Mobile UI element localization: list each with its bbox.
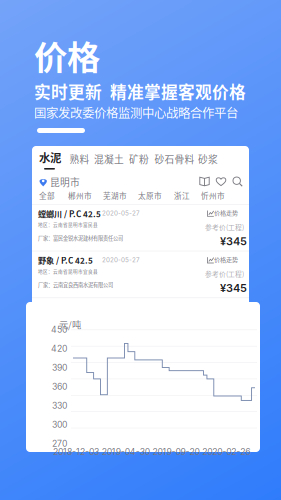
- staticText: 水泥: [39, 149, 61, 166]
- button[interactable]: 砂浆: [198, 152, 218, 166]
- staticText: 270: [52, 438, 67, 449]
- button[interactable]: 熟料: [69, 152, 89, 166]
- staticText: 420: [51, 343, 67, 354]
- staticText: 2020-05-27: [102, 209, 140, 217]
- button[interactable]: 目录: [199, 176, 210, 187]
- staticText: ¥345: [220, 281, 247, 295]
- button[interactable]: 昆明市: [39, 175, 80, 189]
- button[interactable]: 太原市: [138, 190, 162, 201]
- button[interactable]: 忻州市: [201, 190, 225, 201]
- staticText: 2018-12-03: [53, 446, 99, 457]
- staticText: 芜湖市: [103, 190, 127, 201]
- staticText: 390: [52, 362, 67, 373]
- staticText: 2020-05-27: [102, 256, 140, 264]
- staticText: 国家发改委价格监测中心战略合作平台: [34, 103, 238, 121]
- staticText: 450: [51, 324, 67, 335]
- staticText: 元/吨: [59, 317, 81, 331]
- staticText: 昆明市: [50, 175, 80, 189]
- button[interactable]: 砂石骨料: [154, 152, 194, 166]
- staticText: 价格走势: [214, 255, 238, 264]
- staticText: 价格走势: [214, 208, 238, 217]
- staticText: 熟料: [69, 152, 89, 166]
- staticText: 太原市: [138, 190, 162, 201]
- staticText: 参考价(工程): [205, 222, 244, 232]
- staticText: 360: [52, 381, 67, 392]
- button[interactable]: 野象 / P.O 42.5: [32, 345, 249, 391]
- staticText: 300: [52, 419, 67, 430]
- staticText: ¥345: [220, 235, 247, 248]
- staticText: 砂浆: [198, 152, 218, 166]
- button[interactable]: 芜湖市: [103, 190, 127, 201]
- button[interactable]: 螳螂川 / P.C 42.5: [32, 205, 249, 251]
- staticText: 砂石骨料: [154, 152, 194, 166]
- staticText: 忻州市: [201, 190, 225, 201]
- button[interactable]: 郴州市: [68, 190, 92, 201]
- staticText: 参考价(工程): [205, 362, 244, 372]
- staticText: 地区：云南省昆明市富民县: [38, 221, 98, 228]
- staticText: 矿粉: [129, 152, 149, 166]
- staticText: 厂家：云南宜良西南水泥有限公司: [38, 328, 113, 335]
- staticText: 野象 / P.O 42.5: [38, 348, 94, 360]
- staticText: 地区：云南省昆明市宜良县: [38, 361, 98, 368]
- staticText: 厂家：富民金锐水泥建材有限责任公司: [38, 234, 123, 242]
- staticText: 地区：云南省昆明市宜良县: [38, 315, 98, 321]
- staticText: 螳螂川 / P.C 42.5: [38, 208, 101, 219]
- staticText: 混凝土: [94, 152, 124, 166]
- staticText: 价格: [34, 31, 100, 79]
- staticText: 2020-05-27: [102, 350, 140, 357]
- staticText: 郴州市: [68, 190, 92, 201]
- staticText: 2019-04-30: [102, 446, 150, 457]
- button[interactable]: 水泥: [39, 149, 61, 166]
- staticText: 厂家：云南宜良西南水泥有限公司: [38, 281, 113, 288]
- staticText: 实时更新 精准掌握客观价格: [34, 79, 246, 103]
- staticText: 参考价(工程): [205, 269, 244, 279]
- staticText: 2020-02-26: [202, 446, 250, 457]
- button[interactable]: 浙江: [174, 190, 190, 201]
- button[interactable]: 混凝土: [94, 152, 124, 166]
- staticText: 浙江: [174, 190, 190, 201]
- staticText: 野象 / P.C 42.5: [38, 254, 93, 266]
- button[interactable]: 搜索: [232, 176, 243, 187]
- staticText: 厂家：云南宜良西南水泥有限公司: [38, 374, 113, 382]
- button[interactable]: 野象 / P.O 42.5: [32, 298, 249, 344]
- staticText: 全部: [39, 190, 55, 201]
- staticText: 2019-09-20: [152, 446, 199, 457]
- button[interactable]: 矿粉: [129, 152, 149, 166]
- staticText: 330: [52, 400, 67, 411]
- button[interactable]: 收藏: [215, 176, 226, 187]
- button[interactable]: 全部: [39, 190, 55, 201]
- staticText: 地区：云南省昆明市宜良县: [38, 268, 98, 275]
- button[interactable]: 野象 / P.C 42.5: [32, 251, 249, 297]
